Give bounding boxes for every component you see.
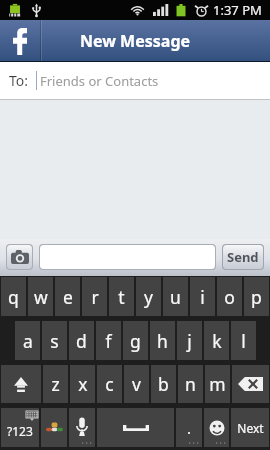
button[interactable]: n [178,365,203,403]
button[interactable]: m [205,365,230,403]
button[interactable]: Shift [1,365,41,403]
staticText: q [8,285,19,309]
button[interactable]: Next [231,408,269,447]
staticText: h [157,329,168,353]
button[interactable]: d [69,321,94,360]
staticText: u [170,285,181,309]
button[interactable]: q [1,277,26,316]
staticText: To: [9,71,29,90]
button[interactable]: w [28,277,53,316]
staticText: e [63,285,73,309]
button[interactable]: Space [97,408,174,447]
staticText: Friends or Contacts [40,72,159,90]
staticText: k [212,329,222,353]
staticText: m [209,372,226,396]
button[interactable]: Send [223,245,263,269]
button[interactable]: c [97,365,122,403]
staticText: r [91,285,99,309]
button[interactable]: z [43,365,68,403]
button[interactable]: j [177,321,202,360]
button[interactable]: p [244,277,269,316]
button[interactable]: i [190,277,215,316]
button[interactable]: k [204,321,229,360]
button[interactable]: Facebook home [0,20,40,62]
staticText: x [78,372,88,396]
button[interactable]: u [163,277,188,316]
button[interactable]: s [42,321,67,360]
staticText: g [130,329,141,353]
staticText: Send [227,248,259,266]
staticText: . [187,418,192,438]
button[interactable]: Backspace [232,365,269,403]
staticText: n [185,372,196,396]
button[interactable]: h [150,321,175,360]
button[interactable]: Voice input [69,408,95,447]
button[interactable]: x [70,365,95,403]
staticText: b [158,372,169,396]
staticText: a [23,329,33,353]
staticText: i [200,285,205,309]
staticText: ?123 [7,423,33,439]
staticText: l [241,329,246,353]
button[interactable]: r [82,277,107,316]
button[interactable]: Change language [41,408,67,447]
staticText: z [51,372,60,396]
button[interactable]: To: [0,62,270,99]
button[interactable]: Camera [7,245,32,269]
button[interactable]: e [55,277,80,316]
button[interactable]: f [96,321,121,360]
button[interactable]: v [124,365,149,403]
staticText: v [132,372,141,396]
button[interactable]: o [217,277,242,316]
button[interactable]: a [15,321,40,360]
button[interactable]: g [123,321,148,360]
staticText: t [118,285,125,309]
button[interactable]: b [151,365,176,403]
staticText: s [50,329,59,353]
staticText: w [34,285,48,309]
button[interactable]: Emoji [204,408,229,447]
staticText: p [251,285,262,309]
staticText: 1:37 PM [213,1,262,19]
staticText: d [76,329,87,353]
staticText: y [144,285,153,309]
button[interactable]: . [176,408,202,447]
staticText: j [187,329,192,353]
staticText: f [105,329,112,353]
staticText: New Message [80,30,191,52]
staticText: c [105,372,114,396]
staticText: o [224,285,235,309]
button[interactable] [40,245,215,269]
button[interactable]: ?123 [1,408,39,447]
button[interactable]: l [231,321,256,360]
button[interactable]: t [109,277,134,316]
staticText: Next [237,420,264,436]
button[interactable]: y [136,277,161,316]
